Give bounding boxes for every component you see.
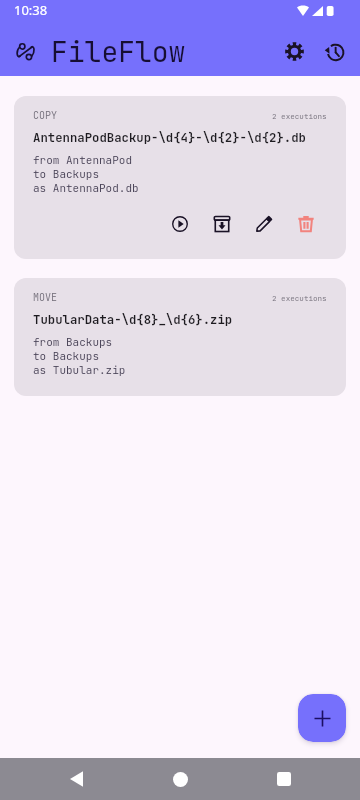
button[interactable]: History xyxy=(314,31,354,71)
button[interactable]: Recents xyxy=(263,758,305,800)
button[interactable]: Home xyxy=(159,758,201,800)
staticText: AntennaPodBackup-\d{4}-\d{2}-\d{2}.db xyxy=(33,129,306,145)
staticText: FileFlow xyxy=(51,33,186,70)
button[interactable]: Back xyxy=(55,758,97,800)
button[interactable]: Delete xyxy=(285,203,327,245)
staticText: MOVE xyxy=(33,291,57,304)
staticText: 2 executions xyxy=(272,111,327,121)
staticText: 10:38 xyxy=(14,1,48,19)
button[interactable]: Edit xyxy=(243,203,285,245)
button[interactable]: Archive xyxy=(201,203,243,245)
staticText: from Backups to Backups as Tubular.zip xyxy=(33,335,126,377)
staticText: from AntennaPod to Backups as AntennaPod… xyxy=(33,153,139,195)
button[interactable]: Settings xyxy=(274,31,314,71)
button[interactable]: COPY xyxy=(14,96,346,259)
button[interactable]: MOVE xyxy=(14,278,346,396)
button[interactable]: Run xyxy=(159,203,201,245)
button[interactable]: Add xyxy=(298,694,346,742)
staticText: 2 executions xyxy=(272,293,327,303)
staticText: COPY xyxy=(33,109,57,122)
staticText: TubularData-\d{8}_\d{6}.zip xyxy=(33,311,233,327)
